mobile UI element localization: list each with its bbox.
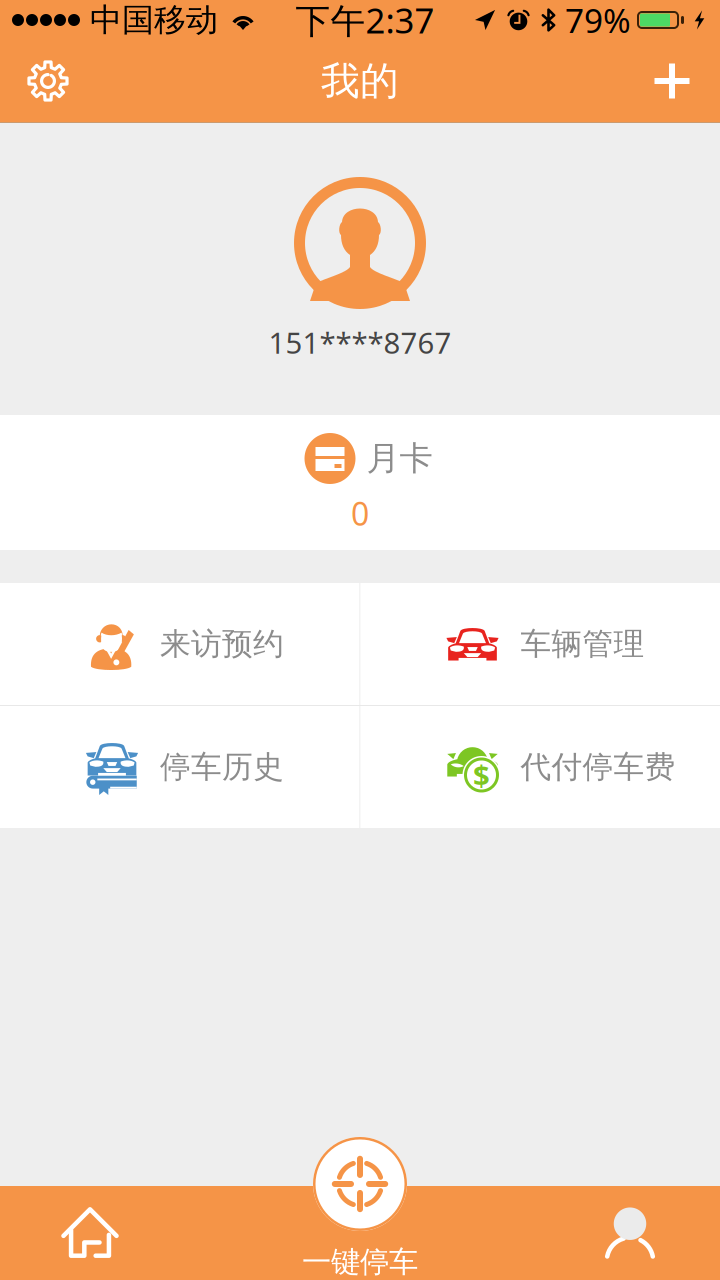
- staticText: 车辆管理: [520, 625, 644, 663]
- staticText: 停车历史: [160, 748, 284, 786]
- staticText: 下午2:37: [295, 0, 434, 43]
- button[interactable]: One-key parking: [302, 1137, 418, 1280]
- staticText: 0: [351, 492, 369, 534]
- button[interactable]: One-key parking: [180, 1186, 540, 1280]
- button[interactable]: Profile: [540, 1186, 720, 1280]
- staticText: 代付停车费: [520, 748, 675, 786]
- button[interactable]: 停车历史: [0, 706, 359, 828]
- button[interactable]: 来访预约: [0, 583, 359, 705]
- staticText: 一键停车: [302, 1244, 418, 1280]
- staticText: 79%: [565, 0, 631, 42]
- staticText: 151****8767: [268, 323, 451, 362]
- button[interactable]: $: [360, 706, 720, 828]
- button[interactable]: Settings: [12, 40, 84, 122]
- button[interactable]: 月卡: [0, 415, 720, 550]
- button[interactable]: Home: [0, 1186, 180, 1280]
- staticText: 来访预约: [160, 625, 284, 663]
- staticText: 我的: [321, 57, 399, 105]
- button[interactable]: Add: [636, 40, 708, 122]
- staticText: 中国移动: [90, 0, 218, 40]
- staticText: $: [473, 755, 490, 794]
- button[interactable]: 车辆管理: [360, 583, 720, 705]
- staticText: 月卡: [366, 438, 432, 479]
